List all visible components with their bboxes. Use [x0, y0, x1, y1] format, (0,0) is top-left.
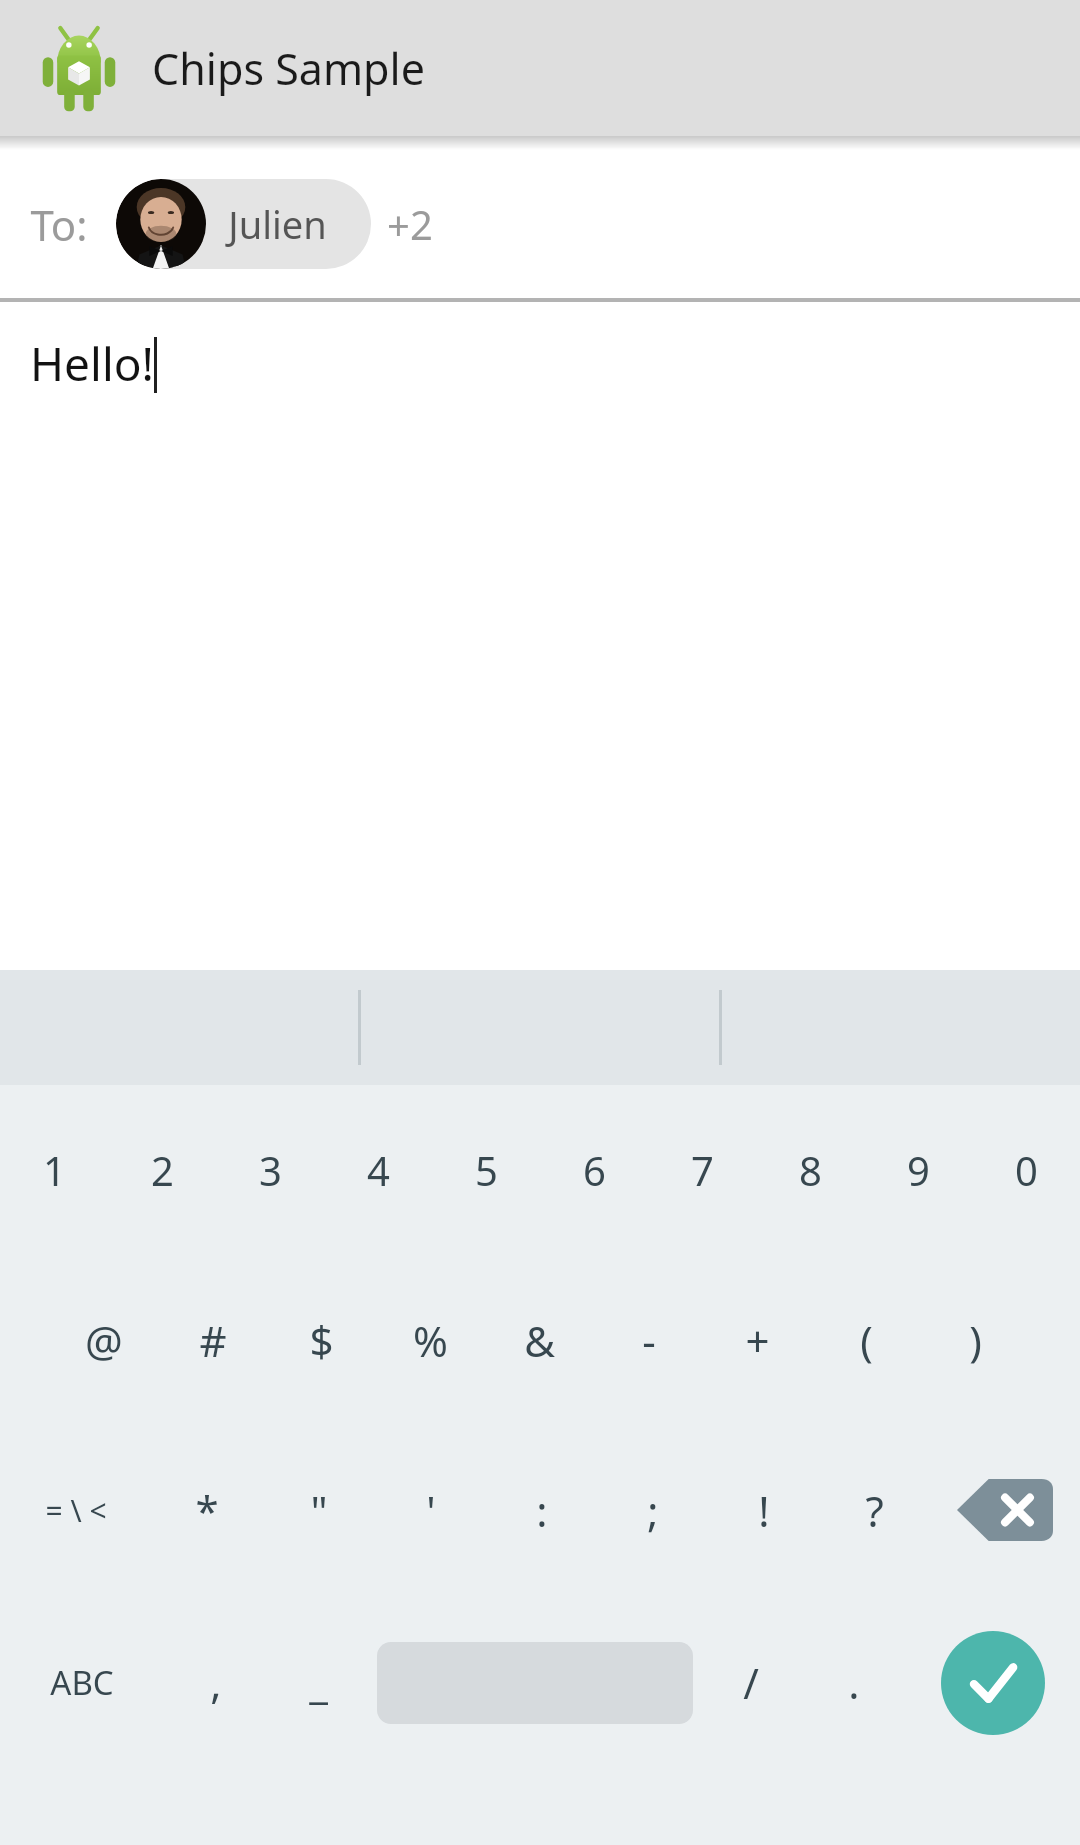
button[interactable]: % — [376, 1255, 485, 1425]
button[interactable]: ( — [812, 1255, 921, 1425]
button[interactable]: . — [802, 1595, 905, 1770]
button[interactable]: 3 — [216, 1085, 324, 1255]
button[interactable]: Hello! — [0, 302, 1080, 970]
staticText: * — [195, 1482, 219, 1539]
staticText: 7 — [691, 1143, 714, 1197]
button[interactable]: @ — [50, 1255, 158, 1425]
staticText: / — [743, 1654, 759, 1711]
staticText: = \ < — [45, 1490, 107, 1531]
button[interactable]: 6 — [540, 1085, 648, 1255]
button[interactable]: Done — [941, 1631, 1045, 1735]
button[interactable]: / — [699, 1595, 802, 1770]
button[interactable]: & — [485, 1255, 594, 1425]
staticText: _ — [309, 1654, 328, 1711]
button[interactable]: Julien — [116, 179, 371, 269]
staticText: ? — [865, 1482, 884, 1539]
button[interactable]: _ — [267, 1595, 370, 1770]
staticText: " — [310, 1482, 328, 1539]
button[interactable]: 4 — [324, 1085, 432, 1255]
button[interactable]: - — [594, 1255, 703, 1425]
staticText: Julien — [228, 198, 327, 250]
staticText: ( — [860, 1312, 873, 1369]
staticText: 8 — [799, 1143, 822, 1197]
staticText: Chips Sample — [152, 39, 425, 98]
button[interactable]: Backspace — [930, 1425, 1080, 1595]
staticText: , — [210, 1654, 222, 1711]
button[interactable]: 5 — [432, 1085, 540, 1255]
button[interactable]: " — [263, 1425, 375, 1595]
button[interactable]: ) — [921, 1255, 1030, 1425]
staticText: 6 — [583, 1143, 606, 1197]
staticText: ! — [758, 1482, 770, 1539]
staticText: ) — [969, 1312, 982, 1369]
button[interactable]: = \ < — [0, 1425, 151, 1595]
staticText: 2 — [151, 1143, 174, 1197]
staticText: 4 — [367, 1143, 390, 1197]
staticText: ' — [426, 1482, 436, 1539]
staticText: Hello! — [30, 332, 154, 395]
button[interactable]: ' — [375, 1425, 486, 1595]
staticText: . — [848, 1654, 860, 1711]
staticText: 3 — [259, 1143, 282, 1197]
button[interactable]: , — [164, 1595, 267, 1770]
staticText: # — [199, 1312, 227, 1369]
staticText: 1 — [43, 1143, 66, 1197]
button[interactable]: : — [486, 1425, 597, 1595]
staticText: @ — [85, 1312, 123, 1369]
button[interactable]: $ — [267, 1255, 376, 1425]
staticText: 0 — [1015, 1143, 1038, 1197]
button[interactable]: ; — [597, 1425, 708, 1595]
staticText: ABC — [50, 1660, 114, 1705]
staticText: : — [536, 1482, 548, 1539]
button[interactable]: 9 — [864, 1085, 972, 1255]
button[interactable]: 1 — [0, 1085, 108, 1255]
button[interactable]: 7 — [648, 1085, 756, 1255]
button[interactable]: + — [703, 1255, 812, 1425]
staticText: 9 — [907, 1143, 930, 1197]
staticText: + — [745, 1312, 770, 1369]
button[interactable]: 2 — [108, 1085, 216, 1255]
button[interactable]: To: — [0, 150, 1080, 298]
staticText: To: — [30, 196, 88, 253]
button[interactable]: ? — [819, 1425, 930, 1595]
button[interactable]: ABC — [0, 1595, 164, 1770]
button[interactable]: 0 — [972, 1085, 1080, 1255]
staticText: $ — [309, 1312, 334, 1369]
staticText: 5 — [475, 1143, 498, 1197]
staticText: & — [524, 1312, 555, 1369]
staticText: +2 — [387, 197, 433, 251]
button[interactable]: ! — [708, 1425, 819, 1595]
staticText: % — [413, 1312, 448, 1369]
staticText: - — [642, 1312, 656, 1369]
button[interactable]: # — [158, 1255, 267, 1425]
button[interactable]: * — [151, 1425, 263, 1595]
staticText: ; — [647, 1482, 659, 1539]
button[interactable]: 8 — [756, 1085, 864, 1255]
